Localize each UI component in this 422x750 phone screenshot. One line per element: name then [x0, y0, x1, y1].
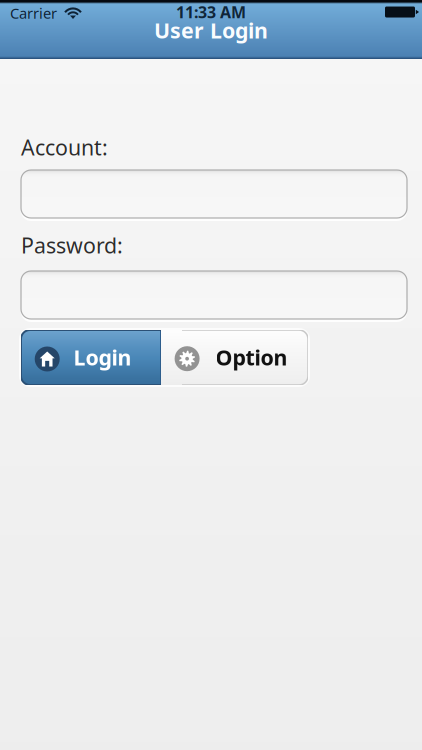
button[interactable]: Option [161, 330, 308, 385]
staticText: Account: [21, 133, 108, 161]
staticText: 11:33 AM [176, 1, 246, 23]
staticText: Password: [21, 231, 123, 259]
staticText: Login [73, 343, 131, 371]
button[interactable]: Login [21, 330, 160, 385]
staticText: Carrier [10, 3, 57, 23]
staticText: Option [215, 343, 287, 371]
staticText: User Login [154, 16, 268, 44]
